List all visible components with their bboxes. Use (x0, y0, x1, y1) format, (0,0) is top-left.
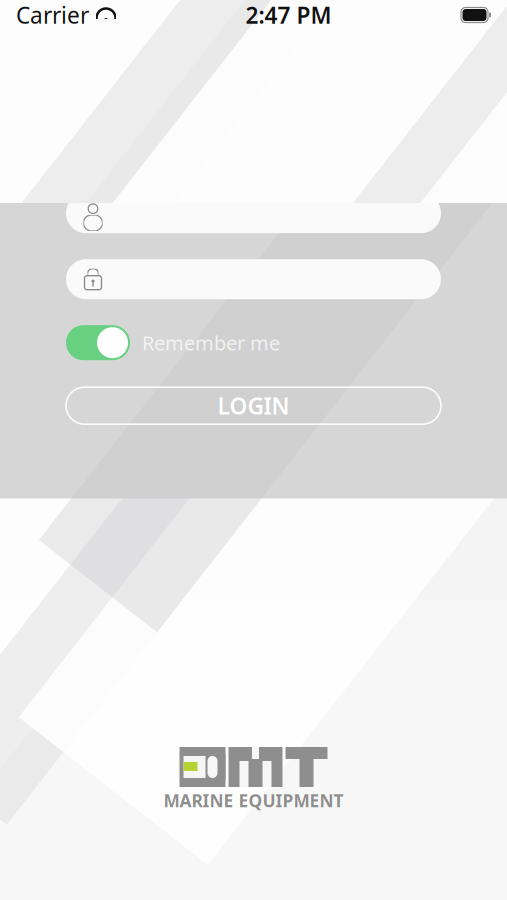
button[interactable]: Text field (66, 259, 441, 299)
staticText: LOGIN (217, 391, 289, 421)
button[interactable]: Remember me toggle, on (66, 325, 130, 360)
staticText: Login (170, 80, 337, 160)
button[interactable]: Text field (66, 193, 441, 233)
staticText: MARINE EQUIPMENT (163, 789, 343, 812)
button[interactable]: LOGIN (66, 387, 441, 424)
staticText: Carrier (16, 0, 89, 30)
staticText: 2:47 PM (245, 0, 331, 30)
staticText: Remember me (142, 329, 280, 356)
